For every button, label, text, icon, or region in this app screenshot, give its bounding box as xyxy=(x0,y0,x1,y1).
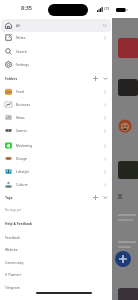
button[interactable]: Settings xyxy=(1,58,111,71)
staticText: Marketing xyxy=(16,143,33,148)
button[interactable]: Food xyxy=(1,85,111,98)
staticText: 8:35 xyxy=(21,4,32,11)
staticText: 12 xyxy=(103,24,107,28)
staticText: News xyxy=(16,115,25,120)
button[interactable]: Collapse Folders xyxy=(100,73,110,83)
staticText: Help & Feedback xyxy=(5,221,33,225)
button[interactable]: X (Twitter) xyxy=(1,268,111,281)
staticText: Food xyxy=(16,89,24,94)
staticText: Community xyxy=(5,260,24,265)
staticText: No tags yet xyxy=(5,208,22,212)
staticText: LTE xyxy=(104,7,110,11)
button[interactable]: Culture xyxy=(1,178,111,191)
button[interactable]: News xyxy=(1,111,111,124)
staticText: Business xyxy=(16,102,31,107)
staticText: Folders xyxy=(5,76,18,80)
button[interactable]: Design xyxy=(1,152,111,165)
button[interactable]: New note xyxy=(115,251,131,267)
button[interactable]: Search xyxy=(1,45,111,58)
staticText: Telegram xyxy=(5,285,20,290)
button[interactable]: Website xyxy=(1,243,111,256)
button[interactable]: Collapse Tags xyxy=(100,192,110,202)
staticText: X (Twitter) xyxy=(5,272,22,277)
button[interactable]: All xyxy=(1,19,111,32)
button[interactable]: Add Folders xyxy=(90,73,100,83)
staticText: Tags xyxy=(5,195,13,199)
staticText: Lifestyle xyxy=(16,169,30,174)
staticText: All xyxy=(16,23,20,28)
staticText: Notes xyxy=(16,35,26,40)
button[interactable]: Marketing xyxy=(1,139,111,152)
staticText: Feedback xyxy=(5,235,21,240)
button[interactable]: Add Tags xyxy=(90,192,100,202)
button[interactable]: Games xyxy=(1,124,111,137)
staticText: Website xyxy=(5,247,18,252)
staticText: Games xyxy=(16,128,28,133)
staticText: Search xyxy=(16,49,27,54)
button[interactable]: Lifestyle xyxy=(1,165,111,178)
button[interactable]: Notes xyxy=(1,31,111,44)
button[interactable]: Feedback xyxy=(1,231,111,244)
button[interactable]: Business xyxy=(1,98,111,111)
staticText: Design xyxy=(16,156,28,161)
button[interactable]: Community xyxy=(1,256,111,269)
staticText: Settings xyxy=(16,62,29,67)
button[interactable]: Telegram xyxy=(1,281,111,294)
staticText: Culture xyxy=(16,182,28,187)
